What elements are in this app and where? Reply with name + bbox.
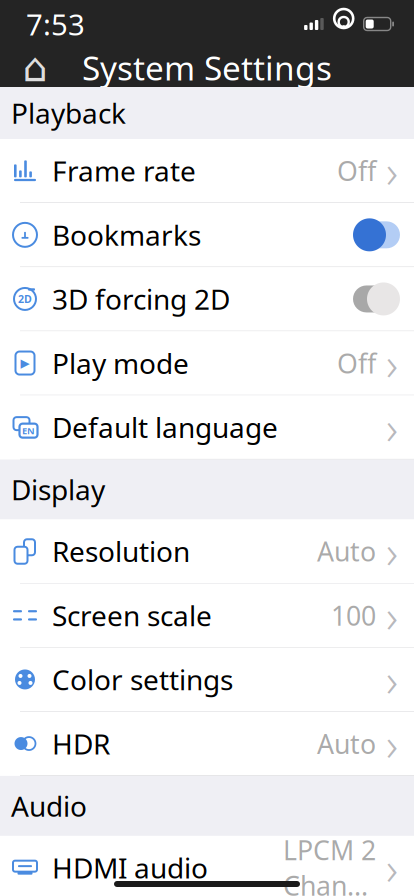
button[interactable]: Bookmarks — [0, 203, 414, 267]
button[interactable]: 2D — [0, 267, 414, 331]
staticText: EN — [22, 424, 35, 437]
staticText: Auto — [317, 726, 376, 761]
button[interactable]: Screen scale — [0, 584, 414, 648]
staticText: Auto — [317, 533, 376, 569]
staticText: › — [386, 141, 398, 201]
staticText: HDMI audio — [52, 849, 208, 886]
staticText: › — [386, 837, 398, 896]
staticText: Screen scale — [52, 597, 212, 634]
staticText: Off — [337, 153, 376, 188]
staticText: Color settings — [52, 661, 233, 698]
staticText: Audio — [11, 787, 87, 824]
staticText: System Settings — [82, 45, 332, 90]
staticText: Playback — [11, 94, 126, 132]
button[interactable]: ▶ — [0, 331, 414, 395]
staticText: Resolution — [52, 533, 190, 570]
staticText: › — [386, 397, 398, 457]
button[interactable]: Color settings — [0, 648, 414, 712]
staticText: LPCM 2 Chan... — [283, 832, 376, 896]
staticText: › — [386, 585, 398, 645]
staticText: › — [386, 333, 398, 393]
staticText: HDR — [52, 725, 110, 762]
staticText: Off — [337, 345, 376, 381]
staticText: › — [386, 649, 398, 709]
button[interactable]: HDR — [0, 712, 414, 776]
staticText: 100 — [331, 598, 376, 633]
staticText: Display — [11, 471, 105, 508]
staticText: Bookmarks — [52, 216, 201, 253]
button[interactable]: Home — [8, 44, 62, 90]
staticText: ⌂ — [22, 45, 47, 90]
staticText: 3D forcing 2D — [52, 280, 230, 318]
staticText: 7:53 — [26, 4, 85, 43]
staticText: 2D — [18, 292, 32, 306]
staticText: ▶ — [20, 356, 29, 370]
staticText: Default language — [52, 409, 278, 446]
button[interactable]: Resolution — [0, 519, 414, 584]
button[interactable]: Frame rate — [0, 139, 414, 203]
button[interactable]: EN — [0, 395, 414, 459]
staticText: › — [386, 521, 398, 581]
staticText: Play mode — [52, 344, 189, 382]
button[interactable]: HDMI audio — [0, 836, 414, 896]
staticText: › — [386, 713, 398, 774]
staticText: Frame rate — [52, 152, 196, 189]
